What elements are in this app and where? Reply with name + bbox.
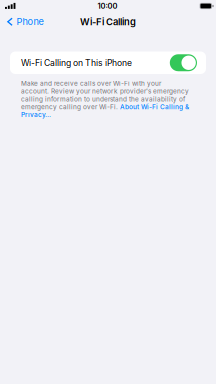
staticText: Phone: [17, 16, 44, 27]
staticText: Make and receive calls over Wi-Fi with y…: [21, 79, 189, 119]
staticText: 10:00: [97, 1, 117, 11]
button[interactable]: Wi-Fi Calling on This iPhone: [170, 54, 197, 71]
staticText: Wi-Fi Calling: [80, 16, 136, 27]
button[interactable]: Phone: [0, 13, 50, 30]
staticText: Wi-Fi Calling on This iPhone: [21, 57, 132, 68]
